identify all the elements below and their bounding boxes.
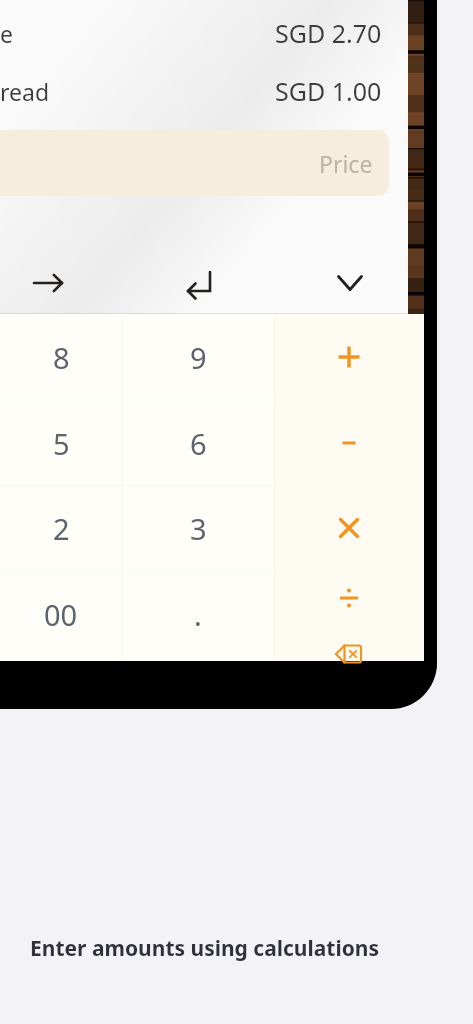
button[interactable]: Hide keyboard (319, 251, 381, 314)
staticText: . (194, 595, 202, 634)
button[interactable]: 5 (0, 400, 122, 486)
button[interactable]: 3 (122, 485, 274, 571)
staticText: Enter amounts using calculations (30, 934, 457, 963)
staticText: read (0, 76, 50, 107)
staticText: 3 (190, 509, 207, 548)
staticText: 00 (44, 595, 78, 634)
staticText: SGD 2.70 (275, 16, 382, 50)
button[interactable]: e (0, 7, 408, 59)
staticText: SGD 1.00 (275, 74, 382, 108)
staticText: 8 (53, 338, 70, 377)
staticText: e (0, 18, 13, 49)
button[interactable]: 2 (0, 485, 122, 571)
staticText: 9 (190, 338, 207, 377)
button[interactable]: Price (0, 130, 389, 196)
button[interactable]: Subtract (274, 400, 424, 486)
button[interactable]: 9 (122, 314, 274, 400)
staticText: Price (319, 148, 373, 179)
button[interactable]: Next field (17, 251, 79, 314)
button[interactable]: Multiply (274, 485, 424, 571)
staticText: 5 (53, 424, 70, 463)
button[interactable]: read (0, 65, 408, 117)
button[interactable]: . (122, 571, 274, 657)
button[interactable]: Return (168, 251, 230, 314)
staticText: 2 (53, 509, 70, 548)
button[interactable]: Add (274, 314, 424, 400)
button[interactable]: 8 (0, 314, 122, 400)
staticText: 6 (190, 424, 207, 463)
button[interactable]: Divide (274, 571, 424, 624)
button[interactable]: 6 (122, 400, 274, 486)
button[interactable]: Backspace (274, 624, 424, 684)
button[interactable]: 00 (0, 571, 122, 657)
